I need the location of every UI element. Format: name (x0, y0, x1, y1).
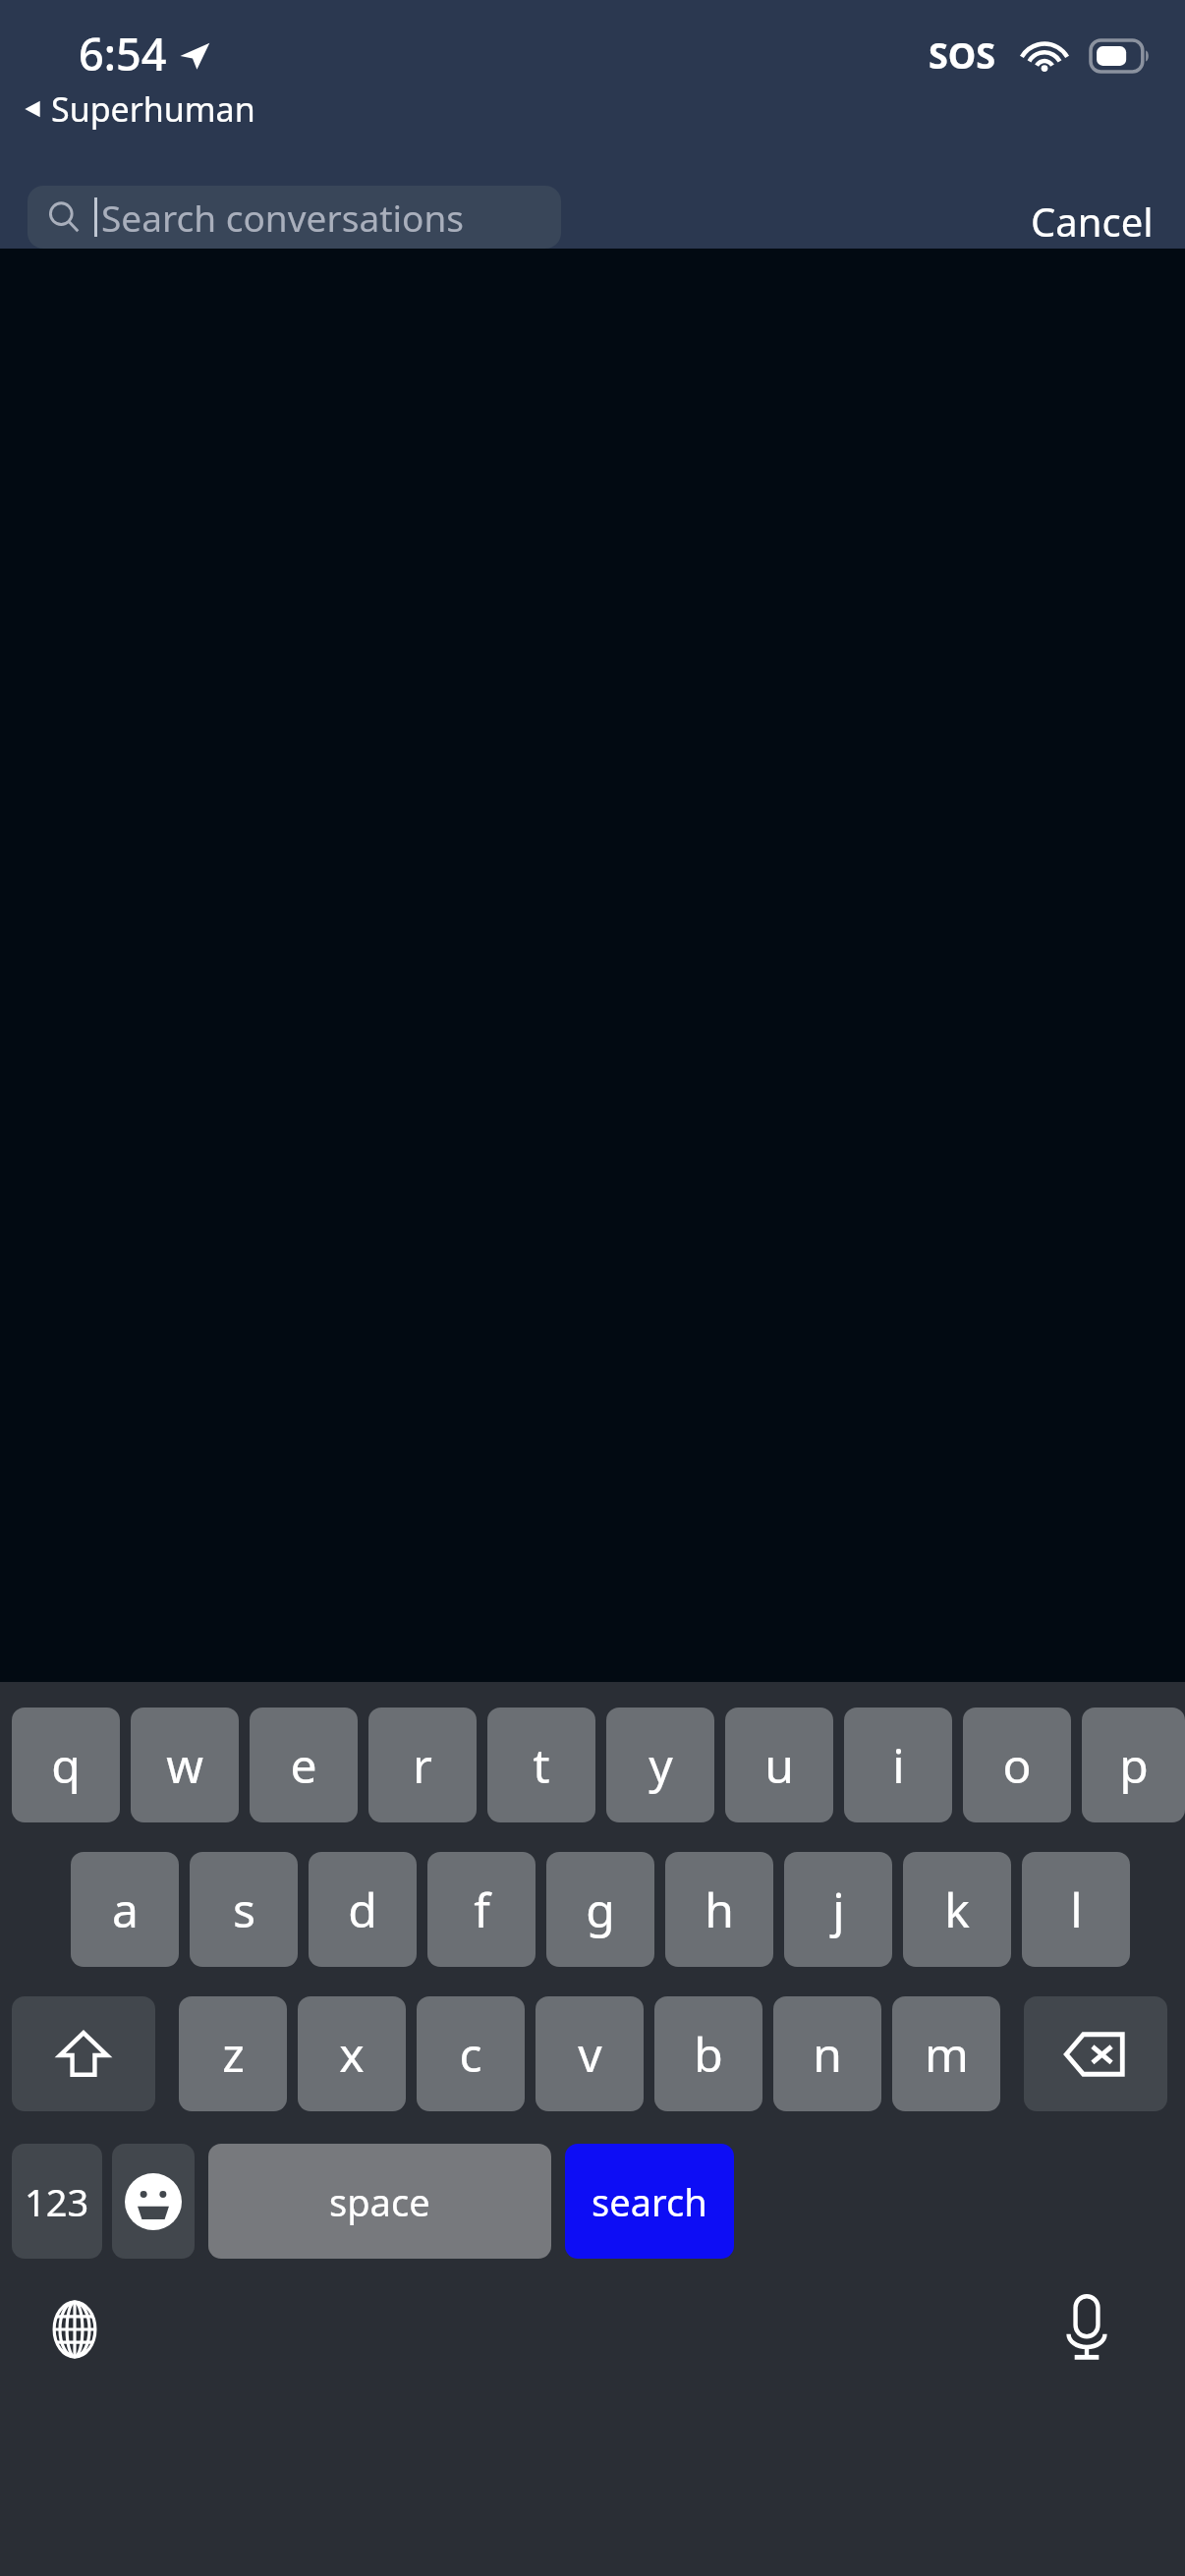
button[interactable]: g (546, 1852, 654, 1967)
button[interactable]: space (208, 2144, 551, 2259)
staticText: SOS (929, 31, 996, 80)
button[interactable]: y (606, 1708, 714, 1822)
button[interactable]: x (298, 1996, 406, 2111)
button[interactable]: l (1022, 1852, 1130, 1967)
staticText: c (459, 2022, 482, 2086)
button[interactable]: Dictation (1045, 2286, 1128, 2369)
staticText: j (832, 1877, 845, 1941)
staticText: t (533, 1733, 550, 1797)
staticText: Search conversations (101, 193, 465, 242)
button[interactable]: n (773, 1996, 881, 2111)
staticText: a (112, 1877, 139, 1941)
staticText: p (1119, 1733, 1149, 1797)
staticText: k (944, 1877, 970, 1941)
button[interactable]: f (427, 1852, 536, 1967)
staticText: n (813, 2022, 842, 2086)
staticText: g (586, 1877, 615, 1941)
staticText: i (892, 1733, 905, 1797)
button[interactable]: e (250, 1708, 358, 1822)
button[interactable]: Change keyboard language (33, 2288, 116, 2371)
staticText: e (290, 1733, 317, 1797)
button[interactable]: m (892, 1996, 1000, 2111)
staticText: 123 (25, 2176, 89, 2227)
button[interactable]: q (12, 1708, 120, 1822)
button[interactable]: o (963, 1708, 1071, 1822)
button[interactable]: p (1082, 1708, 1185, 1822)
button[interactable]: s (190, 1852, 298, 1967)
staticText: Cancel (1031, 195, 1154, 239)
button[interactable]: Search conversations (28, 186, 561, 249)
staticText: search (592, 2176, 707, 2227)
button[interactable]: z (179, 1996, 287, 2111)
staticText: d (348, 1877, 377, 1941)
staticText: v (578, 2022, 602, 2086)
staticText: b (694, 2022, 723, 2086)
button[interactable]: r (368, 1708, 477, 1822)
staticText: Superhuman (51, 86, 255, 132)
button[interactable]: a (71, 1852, 179, 1967)
staticText: l (1070, 1877, 1083, 1941)
button[interactable]: h (665, 1852, 773, 1967)
staticText: r (413, 1733, 432, 1797)
button[interactable]: d (309, 1852, 417, 1967)
staticText: q (51, 1733, 81, 1797)
button[interactable]: Shift (12, 1996, 155, 2111)
staticText: w (166, 1733, 203, 1797)
staticText: u (764, 1733, 794, 1797)
staticText: f (474, 1877, 490, 1941)
button[interactable]: Emoji (112, 2144, 195, 2259)
button[interactable]: c (417, 1996, 525, 2111)
button[interactable]: t (487, 1708, 595, 1822)
staticText: s (233, 1877, 255, 1941)
button[interactable]: Superhuman (22, 86, 255, 132)
button[interactable]: v (536, 1996, 644, 2111)
button[interactable]: Cancel (1023, 185, 1161, 249)
button[interactable]: 123 (12, 2144, 102, 2259)
staticText: space (329, 2176, 430, 2227)
button[interactable]: u (725, 1708, 833, 1822)
button[interactable]: w (131, 1708, 239, 1822)
staticText: m (925, 2022, 969, 2086)
button[interactable]: j (784, 1852, 892, 1967)
staticText: y (649, 1733, 673, 1797)
button[interactable]: k (903, 1852, 1011, 1967)
button[interactable]: search (565, 2144, 734, 2259)
button[interactable]: i (844, 1708, 952, 1822)
staticText: z (222, 2022, 245, 2086)
staticText: 6:54 (79, 24, 167, 84)
staticText: x (339, 2022, 365, 2086)
button[interactable]: b (654, 1996, 762, 2111)
staticText: o (1002, 1733, 1032, 1797)
button[interactable]: Backspace (1024, 1996, 1167, 2111)
staticText: h (705, 1877, 734, 1941)
